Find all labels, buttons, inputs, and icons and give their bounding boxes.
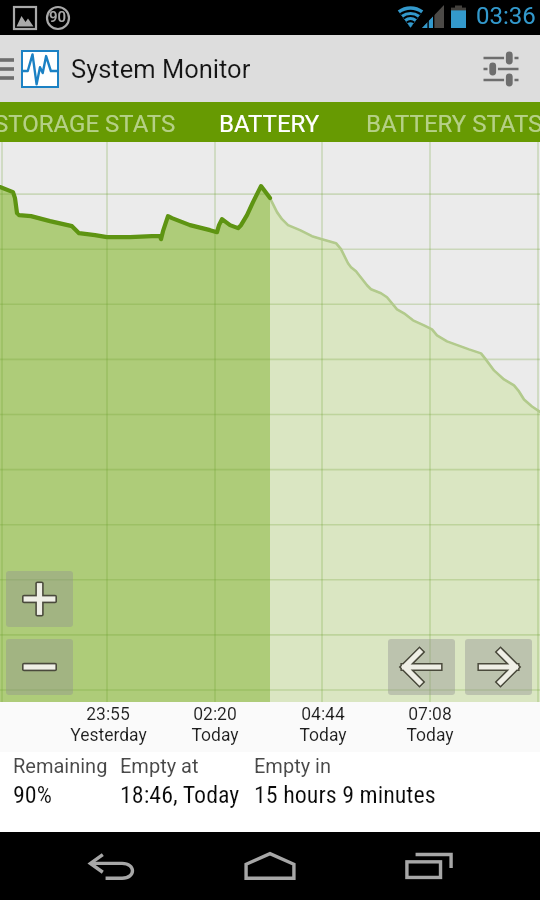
- staticText: 04:44: [301, 704, 345, 725]
- staticText: 23:55: [86, 704, 130, 725]
- button[interactable]: Next: [465, 639, 532, 695]
- staticText: 90%: [13, 781, 52, 809]
- button[interactable]: Previous: [388, 639, 455, 695]
- staticText: Today: [191, 725, 239, 746]
- staticText: STORAGE STATS: [0, 110, 176, 138]
- staticText: System Monitor: [71, 54, 251, 84]
- staticText: Remaining: [13, 754, 108, 777]
- button[interactable]: Open navigation drawer: [0, 35, 260, 102]
- button[interactable]: Zoom in: [6, 571, 73, 627]
- staticText: 02:20: [193, 704, 237, 725]
- button[interactable]: Settings: [462, 35, 540, 102]
- button[interactable]: BATTERY STATS: [362, 104, 540, 144]
- staticText: Today: [299, 725, 347, 746]
- button[interactable]: Home: [205, 832, 335, 900]
- staticText: Empty in: [254, 754, 332, 777]
- staticText: 90: [49, 8, 67, 26]
- staticText: 18:46, Today: [120, 781, 240, 809]
- button[interactable]: Zoom out: [6, 639, 73, 695]
- staticText: 03:36: [476, 2, 536, 30]
- staticText: Yesterday: [70, 725, 147, 746]
- staticText: 15 hours 9 minutes: [254, 781, 436, 809]
- button[interactable]: Back: [47, 832, 177, 900]
- staticText: Today: [406, 725, 454, 746]
- button[interactable]: Recent apps: [364, 832, 494, 900]
- staticText: BATTERY: [219, 110, 320, 138]
- staticText: Empty at: [120, 754, 199, 777]
- button[interactable]: BATTERY: [177, 104, 362, 144]
- button[interactable]: STORAGE STATS: [0, 104, 177, 144]
- staticText: BATTERY STATS: [366, 110, 540, 138]
- staticText: 07:08: [408, 704, 452, 725]
